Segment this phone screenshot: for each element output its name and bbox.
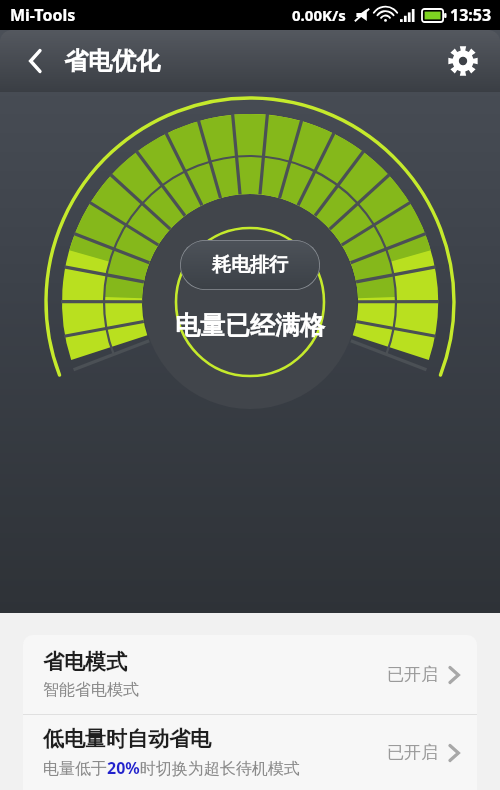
staticText: 耗电排行: [212, 253, 288, 277]
staticText: 电量已经满格: [175, 310, 325, 341]
staticText: 13:53: [450, 4, 492, 26]
button[interactable]: Back: [14, 39, 58, 83]
staticText: 0.00K/s: [292, 5, 346, 25]
staticText: 电量低于20%时切换为超长待机模式: [43, 757, 300, 779]
button[interactable]: 低电量时自动省电: [23, 715, 477, 790]
staticText: 已开启: [387, 664, 438, 685]
staticText: 已开启: [387, 742, 438, 763]
button[interactable]: 耗电排行: [180, 240, 320, 290]
button[interactable]: Settings: [440, 38, 486, 84]
staticText: Mi-Tools: [10, 4, 76, 26]
staticText: 省电模式: [43, 649, 127, 675]
button[interactable]: 省电模式: [23, 635, 477, 714]
staticText: 省电优化: [64, 46, 160, 76]
staticText: 低电量时自动省电: [43, 726, 211, 752]
staticText: 智能省电模式: [43, 680, 139, 700]
